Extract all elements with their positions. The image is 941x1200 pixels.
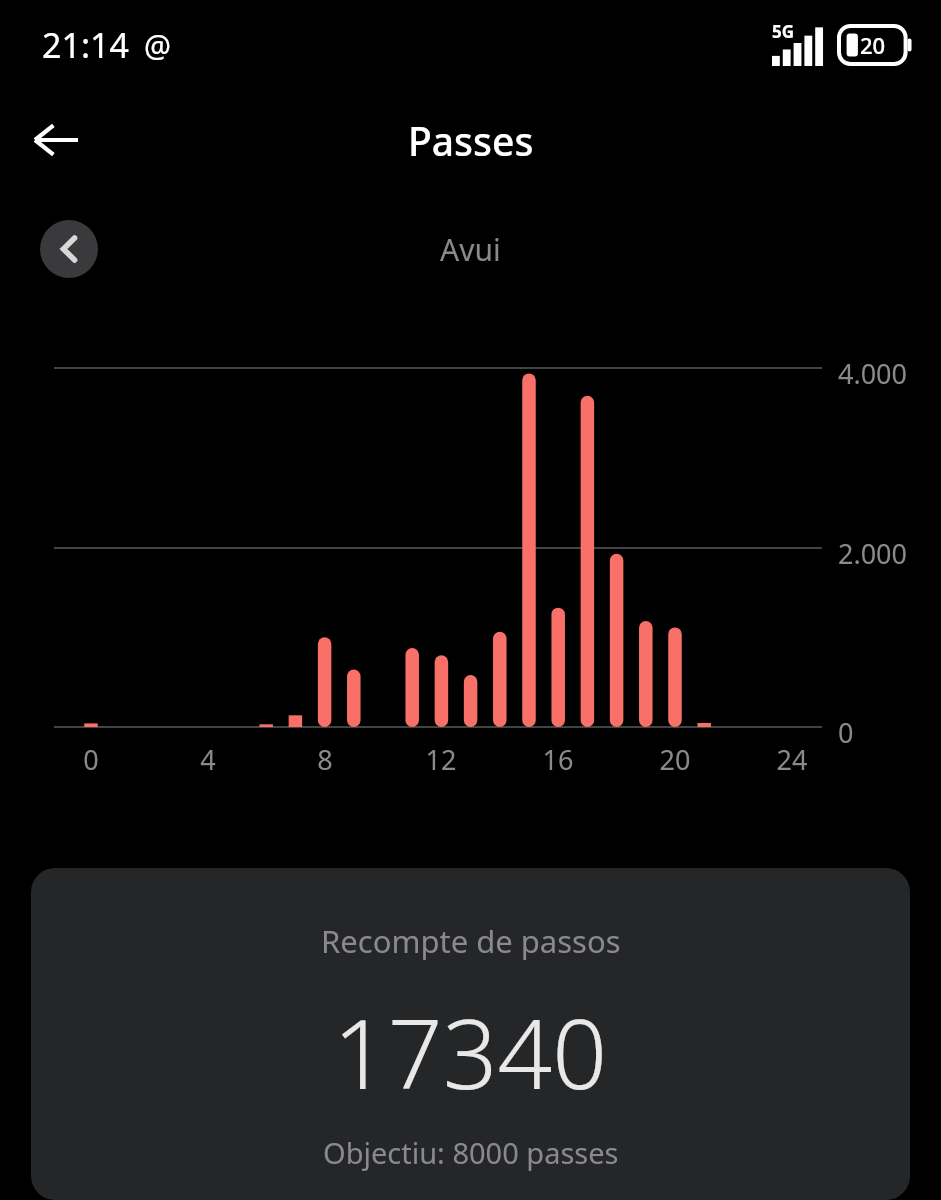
staticText: 0: [838, 714, 854, 751]
staticText: 21:14: [42, 22, 129, 68]
staticText: 0: [65, 741, 117, 778]
staticText: 4: [182, 741, 234, 778]
staticText: Avui: [440, 229, 501, 270]
staticText: Recompte de passos: [321, 920, 621, 962]
staticText: 16: [532, 741, 584, 778]
staticText: 5G: [772, 20, 795, 43]
staticText: 24: [766, 741, 818, 778]
staticText: 8: [299, 741, 351, 778]
staticText: Passes: [408, 114, 534, 167]
staticText: 17340: [333, 986, 608, 1117]
staticText: 12: [415, 741, 467, 778]
staticText: @: [144, 25, 171, 66]
staticText: Objectiu: 8000 passes: [323, 1133, 619, 1172]
button[interactable]: Previous day: [40, 220, 98, 278]
button[interactable]: Recompte de passos: [31, 868, 910, 1200]
staticText: 4.000: [838, 355, 908, 392]
staticText: 20: [649, 741, 701, 778]
button[interactable]: Back: [18, 102, 94, 178]
staticText: 20: [860, 30, 886, 60]
staticText: 2.000: [838, 535, 908, 572]
